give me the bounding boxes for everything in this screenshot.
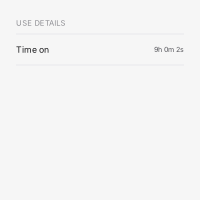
- button[interactable]: Time on: [0, 34, 200, 65]
- staticText: Time on: [16, 44, 49, 55]
- staticText: USE DETAILS: [16, 18, 65, 28]
- staticText: 9h 0m 2s: [154, 45, 184, 54]
